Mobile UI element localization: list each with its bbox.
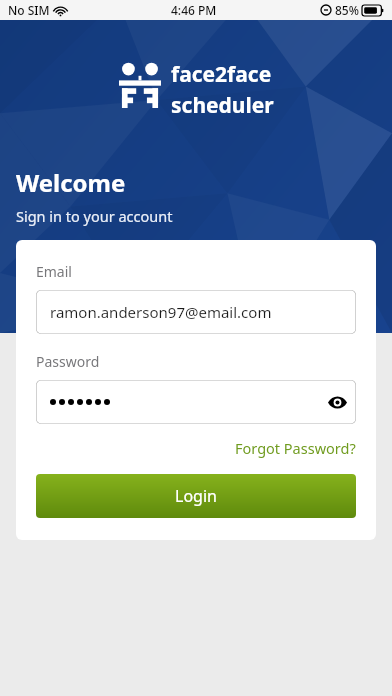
staticText: Sign in to your account bbox=[16, 206, 173, 226]
staticText: Forgot Password? bbox=[235, 438, 356, 458]
staticText: face2face bbox=[171, 60, 272, 89]
staticText: 4:46 PM bbox=[171, 2, 217, 18]
staticText: scheduler bbox=[171, 91, 274, 120]
staticText: 85% bbox=[335, 2, 359, 18]
button[interactable]: Login bbox=[36, 474, 356, 518]
staticText: Password bbox=[36, 352, 100, 371]
staticText: Welcome bbox=[16, 166, 126, 199]
button[interactable]: Show password bbox=[318, 383, 356, 421]
button[interactable]: Forgot Password? bbox=[235, 438, 356, 458]
button[interactable]: ramon.anderson97@email.com bbox=[36, 290, 356, 334]
staticText: No SIM bbox=[8, 2, 50, 18]
staticText: ramon.anderson97@email.com bbox=[50, 302, 272, 322]
staticText: Email bbox=[36, 262, 72, 281]
button[interactable]: Show password bbox=[36, 380, 356, 424]
staticText: Login bbox=[175, 485, 217, 507]
